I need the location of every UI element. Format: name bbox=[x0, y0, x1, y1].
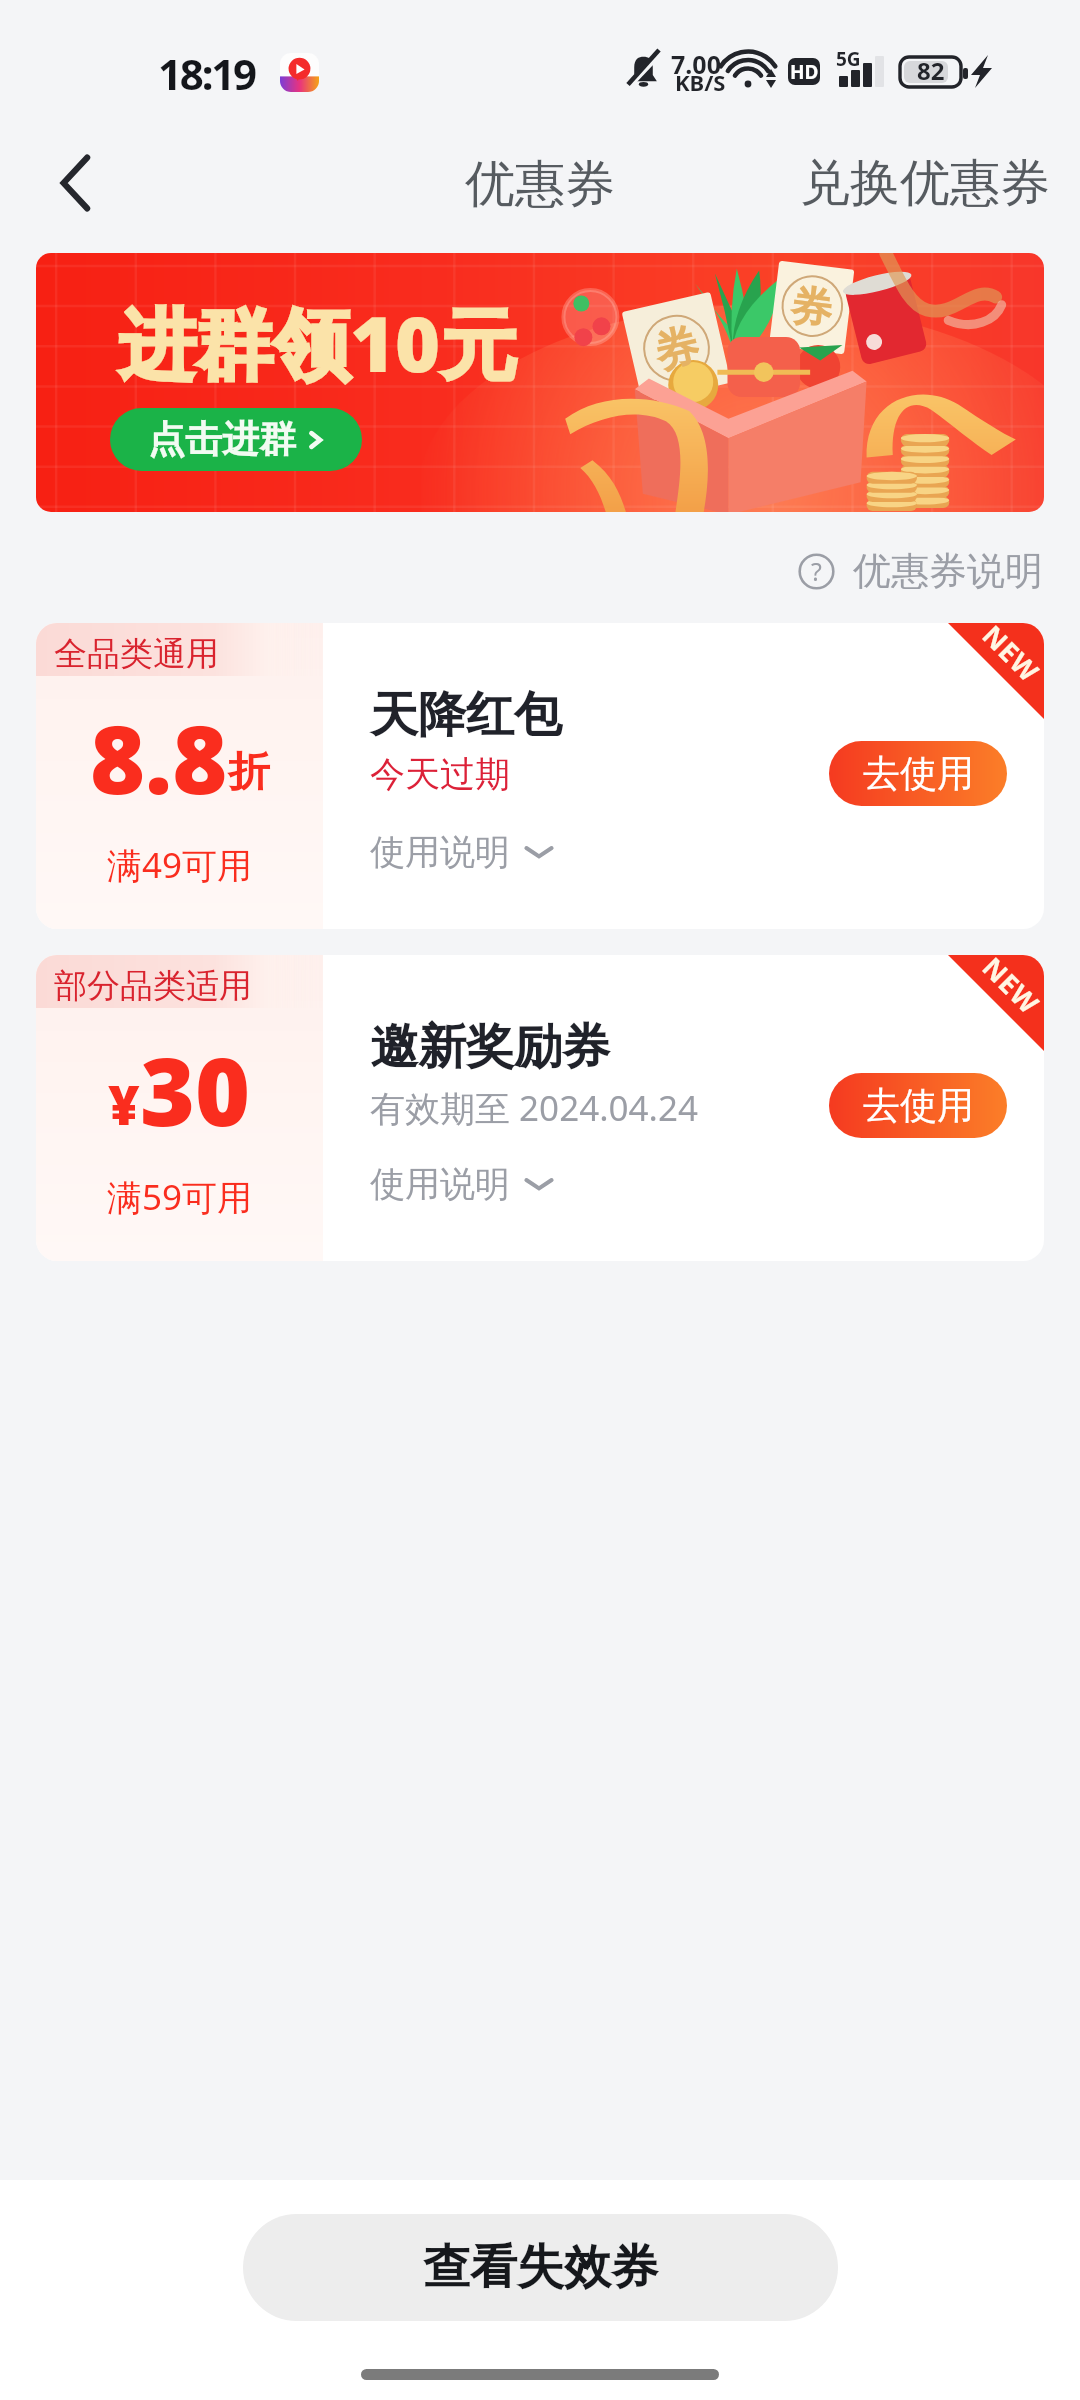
staticText: 券 bbox=[649, 318, 703, 374]
staticText: NEW bbox=[975, 623, 1044, 690]
staticText: 兑换优惠券 bbox=[800, 152, 1050, 215]
button[interactable]: 点击进群 bbox=[110, 408, 362, 471]
button[interactable]: 使用说明 bbox=[370, 1162, 554, 1206]
button[interactable]: 兑换优惠券 bbox=[794, 136, 1056, 231]
staticText: 券 bbox=[788, 280, 836, 330]
staticText: 邀新奖励券 bbox=[370, 1017, 610, 1077]
button[interactable]: 去使用 bbox=[829, 741, 1007, 806]
staticText: 今天过期 bbox=[370, 752, 510, 796]
staticText: 5G bbox=[836, 46, 861, 72]
staticText: 8.8 bbox=[90, 694, 228, 822]
staticText: HD bbox=[790, 59, 819, 85]
staticText: ? bbox=[811, 554, 822, 588]
button[interactable]: 部分品类适用 bbox=[36, 955, 1044, 1261]
button[interactable]: ? bbox=[791, 541, 1080, 601]
staticText: 点击进群 bbox=[148, 416, 296, 463]
staticText: 全品类通用 bbox=[54, 633, 219, 675]
staticText: 使用说明 bbox=[370, 1162, 510, 1206]
button[interactable]: 全品类通用 bbox=[36, 623, 1044, 929]
button[interactable]: 去使用 bbox=[829, 1073, 1007, 1138]
button[interactable]: 查看失效券 bbox=[243, 2214, 838, 2321]
button[interactable]: Back bbox=[34, 141, 118, 225]
staticText: 82 bbox=[917, 54, 945, 87]
staticText: 进群领10元 bbox=[119, 290, 518, 395]
staticText: 查看失效券 bbox=[423, 2238, 658, 2297]
staticText: 18:19 bbox=[158, 45, 255, 102]
staticText: ¥ bbox=[108, 1067, 140, 1141]
staticText: NEW bbox=[975, 955, 1044, 1022]
staticText: 7.00 bbox=[671, 47, 721, 81]
staticText: 优惠券 bbox=[465, 153, 615, 216]
staticText: 有效期至 2024.04.24 bbox=[370, 1084, 699, 1132]
staticText: 折 bbox=[228, 746, 270, 799]
staticText: 去使用 bbox=[863, 1082, 974, 1129]
staticText: 优惠券说明 bbox=[853, 547, 1043, 595]
staticText: 满59可用 bbox=[36, 1173, 323, 1221]
staticText: 去使用 bbox=[863, 750, 974, 797]
button[interactable]: 使用说明 bbox=[370, 830, 554, 874]
staticText: 使用说明 bbox=[370, 830, 510, 874]
staticText: 满49可用 bbox=[36, 841, 323, 889]
staticText: 30 bbox=[140, 1026, 251, 1154]
staticText: 部分品类适用 bbox=[54, 965, 252, 1007]
button[interactable]: 券 bbox=[36, 253, 1044, 512]
staticText: 天降红包 bbox=[370, 685, 562, 745]
staticText: KB/S bbox=[675, 67, 726, 97]
